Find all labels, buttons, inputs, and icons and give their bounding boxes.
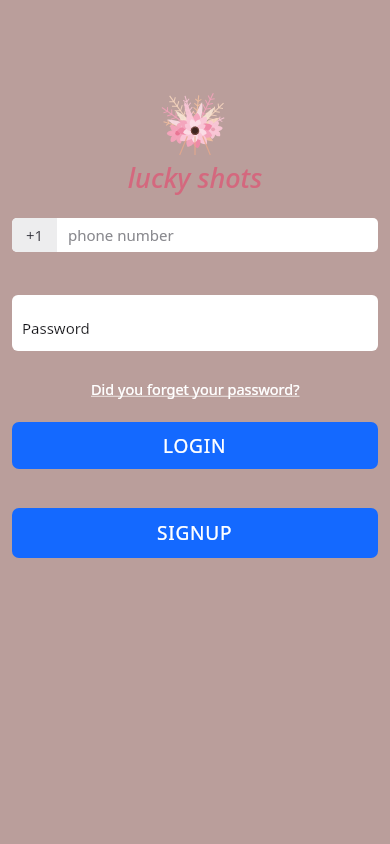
staticText: phone number bbox=[68, 225, 174, 245]
staticText: lucky shots bbox=[95, 159, 295, 196]
button[interactable]: Did you forget your password? bbox=[85, 377, 306, 401]
button[interactable]: LOGIN bbox=[12, 422, 378, 469]
staticText: SIGNUP bbox=[157, 520, 233, 546]
staticText: Password bbox=[22, 318, 90, 338]
button[interactable]: Password bbox=[12, 295, 378, 351]
staticText: +1 bbox=[26, 225, 44, 245]
button[interactable]: SIGNUP bbox=[12, 508, 378, 558]
staticText: LOGIN bbox=[163, 433, 227, 459]
staticText: Did you forget your password? bbox=[91, 379, 300, 399]
button[interactable]: +1 bbox=[12, 218, 378, 252]
